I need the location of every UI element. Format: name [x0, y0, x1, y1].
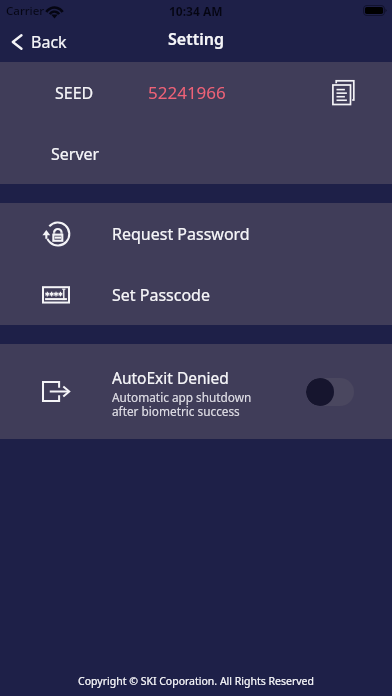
button[interactable]: Request Password	[0, 203, 392, 264]
button[interactable]: AutoExit Denied	[0, 344, 392, 439]
staticText: Request Password	[112, 223, 250, 245]
staticText: Copyright © SKI Coporation. All Rights R…	[0, 674, 392, 688]
button[interactable]: Back	[10, 31, 67, 53]
staticText: Automatic app shutdown after biometric s…	[112, 389, 252, 419]
button[interactable]: Server	[0, 123, 392, 184]
staticText: Server	[51, 143, 100, 165]
button[interactable]: AutoExit toggle	[306, 378, 354, 406]
staticText: Carrier	[6, 3, 45, 19]
staticText: Setting	[168, 28, 224, 50]
staticText: Back	[31, 31, 67, 53]
staticText: 10:34 AM	[169, 3, 223, 19]
staticText: SEED	[55, 82, 94, 104]
staticText: AutoExit Denied	[112, 367, 229, 388]
button[interactable]: Set Passcode	[0, 264, 392, 325]
button[interactable]: SEED	[0, 62, 392, 123]
button[interactable]: Copy seed	[321, 71, 365, 115]
staticText: Set Passcode	[112, 284, 210, 306]
staticText: 52241966	[148, 81, 226, 104]
